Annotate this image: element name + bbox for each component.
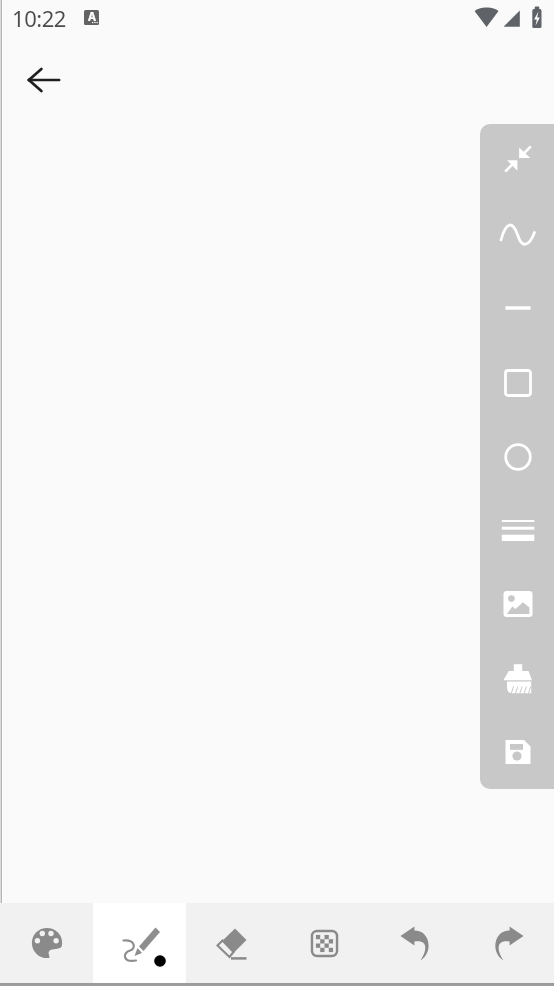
button[interactable]: Undo <box>370 903 462 983</box>
button[interactable]: Save <box>492 726 544 778</box>
button[interactable]: Curve <box>492 208 544 260</box>
button[interactable]: Image <box>492 578 544 630</box>
button[interactable]: Line <box>492 282 544 334</box>
button[interactable]: Stroke width <box>492 505 544 557</box>
button[interactable]: Pen <box>93 903 186 983</box>
staticText: A <box>88 10 96 24</box>
button[interactable]: Circle <box>492 431 544 483</box>
button[interactable]: Background <box>278 903 370 983</box>
button[interactable]: Collapse <box>492 133 544 185</box>
button[interactable]: Clear <box>492 653 544 705</box>
button[interactable]: Back <box>18 54 70 106</box>
button[interactable]: Eraser <box>186 903 278 983</box>
staticText: 10:22 <box>12 3 66 33</box>
button[interactable]: Redo <box>462 903 554 983</box>
button[interactable]: Colour palette <box>0 903 93 983</box>
button[interactable]: Rectangle <box>492 357 544 409</box>
